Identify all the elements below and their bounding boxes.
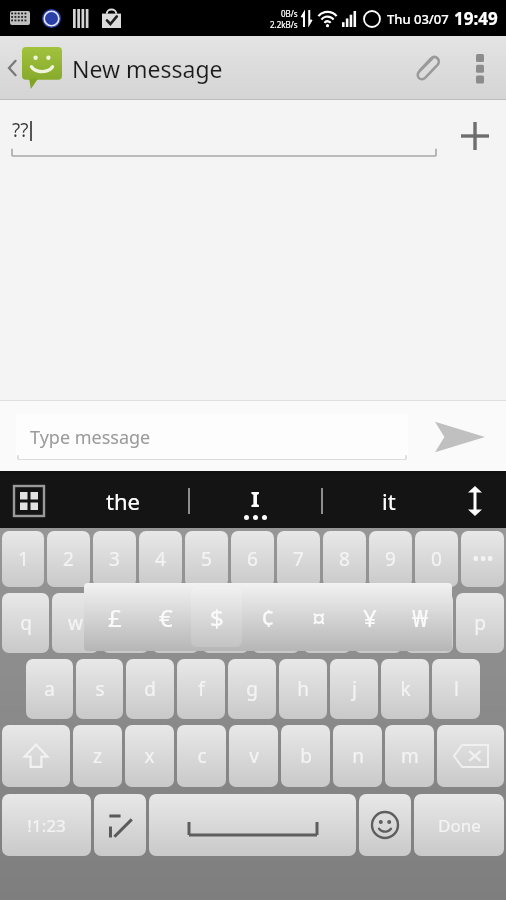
staticText: 0B/s — [281, 8, 298, 19]
button[interactable]: Emoji — [359, 794, 411, 856]
button[interactable]: Shift — [2, 725, 70, 787]
button[interactable]: h — [279, 659, 327, 719]
button[interactable]: e — [102, 593, 149, 653]
button[interactable]: 3 — [93, 531, 136, 587]
staticText: q — [20, 610, 32, 636]
staticText: r — [172, 610, 180, 636]
staticText: ••• — [472, 546, 494, 572]
staticText: ¤ — [312, 601, 326, 634]
staticText: £ — [108, 601, 122, 634]
staticText: g — [246, 676, 258, 702]
button[interactable]: 6 — [231, 531, 274, 587]
staticText: s — [95, 676, 105, 702]
staticText: n — [352, 743, 364, 769]
button[interactable]: v — [229, 725, 278, 787]
staticText: New message — [72, 53, 223, 84]
staticText: v — [249, 743, 259, 769]
staticText: 0 — [431, 546, 442, 572]
staticText: 8 — [339, 546, 350, 572]
button[interactable]: Handwriting — [94, 794, 146, 856]
staticText: Type message — [30, 425, 151, 450]
staticText: o — [423, 610, 435, 636]
staticText: 5 — [201, 546, 212, 572]
button[interactable]: Done — [414, 794, 504, 856]
button[interactable]: d — [126, 659, 174, 719]
button[interactable]: ¤ — [293, 583, 344, 651]
staticText: I — [251, 483, 260, 513]
button[interactable]: n — [333, 725, 382, 787]
staticText: j — [352, 676, 357, 702]
button[interactable]: Keyboard menu — [11, 483, 47, 519]
staticText: Thu 03/07 — [387, 10, 449, 28]
button[interactable]: 5 — [185, 531, 228, 587]
button[interactable]: !1:23 — [2, 794, 91, 856]
staticText: the — [106, 486, 140, 516]
button[interactable]: l — [432, 659, 480, 719]
button[interactable]: y — [252, 593, 300, 653]
button[interactable]: 0 — [415, 531, 458, 587]
button[interactable]: Backspace — [437, 725, 504, 787]
button[interactable]: 1 — [2, 531, 44, 587]
button[interactable]: a — [26, 659, 73, 719]
button[interactable]: o — [405, 593, 453, 653]
staticText: 4 — [155, 546, 166, 572]
button[interactable]: Add recipient — [444, 100, 506, 172]
button[interactable]: $ — [191, 587, 242, 647]
button[interactable]: Attach — [398, 36, 454, 100]
staticText: b — [300, 743, 312, 769]
button[interactable]: ¥ — [344, 583, 395, 651]
button[interactable]: 2 — [47, 531, 90, 587]
button[interactable]: ?? — [12, 117, 436, 156]
staticText: ?? — [12, 117, 29, 143]
button[interactable]: 9 — [369, 531, 412, 587]
button[interactable]: ••• — [461, 531, 504, 587]
staticText: 6 — [247, 546, 258, 572]
button[interactable]: Expand — [458, 484, 492, 518]
button[interactable]: the — [58, 474, 188, 528]
button[interactable]: ₩ — [395, 583, 446, 651]
staticText: 19:49 — [454, 7, 498, 30]
button[interactable]: c — [177, 725, 226, 787]
staticText: t — [222, 610, 229, 636]
button[interactable]: £ — [90, 583, 140, 651]
button[interactable]: Type message — [16, 414, 408, 460]
staticText: w — [68, 610, 83, 636]
button[interactable]: j — [330, 659, 378, 719]
staticText: € — [159, 601, 173, 634]
button[interactable]: New message — [0, 36, 231, 100]
button[interactable]: I — [237, 483, 274, 513]
staticText: h — [297, 676, 309, 702]
button[interactable]: m — [385, 725, 434, 787]
button[interactable]: r — [152, 593, 199, 653]
staticText: k — [400, 676, 411, 702]
button[interactable]: f — [177, 659, 225, 719]
button[interactable]: k — [381, 659, 429, 719]
staticText: 2 — [63, 546, 74, 572]
button[interactable]: 4 — [139, 531, 182, 587]
button[interactable]: 8 — [323, 531, 366, 587]
button[interactable]: Space — [149, 794, 356, 856]
button[interactable]: p — [456, 593, 504, 653]
button[interactable]: 7 — [277, 531, 320, 587]
button[interactable]: Send — [414, 400, 506, 474]
staticText: p — [474, 610, 486, 636]
button[interactable]: ¢ — [242, 583, 293, 651]
button[interactable]: More options — [454, 36, 506, 100]
staticText: 9 — [385, 546, 396, 572]
button[interactable]: € — [140, 583, 191, 651]
staticText: ₩ — [412, 601, 429, 634]
button[interactable]: x — [125, 725, 174, 787]
button[interactable]: it — [323, 474, 454, 528]
button[interactable]: b — [281, 725, 330, 787]
button[interactable]: t — [202, 593, 249, 653]
staticText: a — [44, 676, 55, 702]
button[interactable]: q — [2, 593, 49, 653]
button[interactable]: s — [76, 659, 123, 719]
staticText: Done — [438, 814, 481, 837]
button[interactable]: i — [354, 593, 402, 653]
button[interactable]: z — [73, 725, 122, 787]
button[interactable]: g — [228, 659, 276, 719]
button[interactable]: u — [303, 593, 351, 653]
staticText: m — [401, 743, 419, 769]
button[interactable]: w — [52, 593, 99, 653]
